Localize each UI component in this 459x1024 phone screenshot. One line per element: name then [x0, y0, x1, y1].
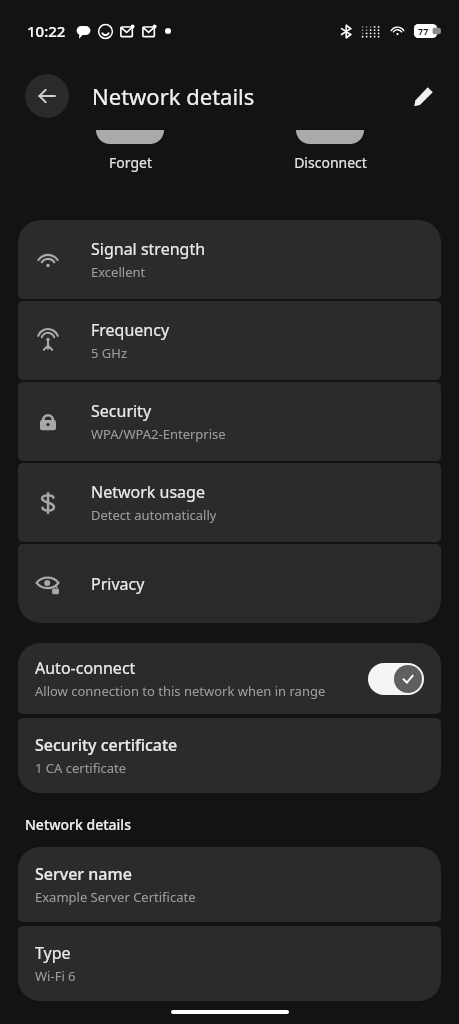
button[interactable]: Security: [18, 382, 441, 461]
staticText: Example Server Certificate: [35, 888, 196, 906]
staticText: Auto-connect: [35, 657, 136, 679]
staticText: Detect automatically: [91, 506, 217, 524]
button[interactable]: Frequency: [18, 301, 441, 380]
button[interactable]: Type: [18, 926, 441, 1001]
button[interactable]: Privacy: [18, 544, 441, 623]
button[interactable]: Forget: [78, 130, 182, 172]
button[interactable]: Back: [25, 74, 69, 118]
staticText: 5 GHz: [91, 344, 128, 362]
staticText: 77: [418, 25, 429, 37]
staticText: Security certificate: [35, 734, 178, 756]
staticText: Excellent: [91, 263, 146, 281]
staticText: WPA/WPA2-Enterprise: [91, 425, 226, 443]
button[interactable]: Signal strength: [18, 220, 441, 299]
button[interactable]: Disconnect: [278, 130, 382, 172]
staticText: Privacy: [91, 573, 145, 595]
staticText: Network usage: [91, 481, 205, 503]
staticText: Allow connection to this network when in…: [35, 682, 326, 700]
staticText: Network details: [92, 81, 255, 111]
button[interactable]: Security certificate: [18, 718, 441, 793]
button[interactable]: Auto-connect: [18, 643, 441, 714]
staticText: Forget: [109, 153, 152, 172]
staticText: Network details: [25, 815, 131, 834]
button[interactable]: Network usage: [18, 463, 441, 542]
staticText: Security: [91, 400, 152, 422]
staticText: Wi-Fi 6: [35, 967, 76, 985]
staticText: 1 CA certificate: [35, 759, 127, 777]
staticText: Type: [35, 942, 71, 964]
staticText: Signal strength: [91, 238, 206, 260]
button[interactable]: Edit: [401, 74, 445, 118]
staticText: Frequency: [91, 319, 170, 341]
button[interactable]: Server name: [18, 847, 441, 922]
staticText: 10:22: [27, 21, 66, 41]
button[interactable]: Auto-connect toggle: [368, 663, 424, 695]
staticText: Disconnect: [294, 153, 367, 172]
staticText: Server name: [35, 863, 132, 885]
